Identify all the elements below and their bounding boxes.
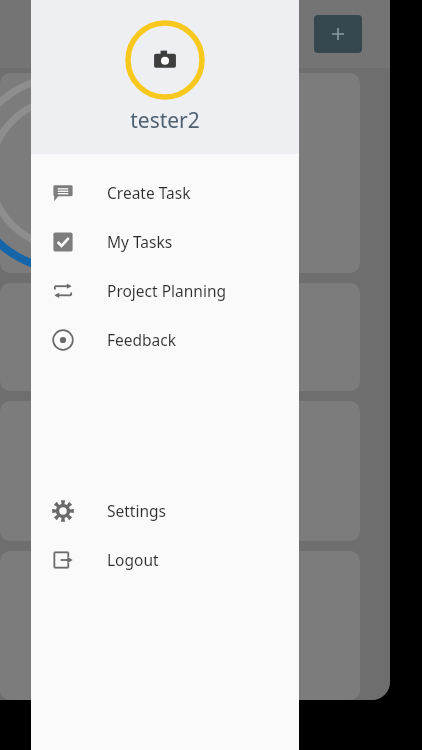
button[interactable]: Settings: [31, 486, 299, 535]
staticText: tester2: [130, 106, 200, 135]
button[interactable]: Feedback: [31, 315, 299, 364]
staticText: Create Task: [107, 182, 191, 203]
button[interactable]: [0, 73, 360, 273]
staticText: Settings: [107, 500, 166, 521]
button[interactable]: Progress: [0, 401, 360, 541]
button[interactable]: Logout: [31, 535, 299, 584]
staticText: Feedback: [107, 329, 177, 350]
button[interactable]: Project Planning: [31, 266, 299, 315]
button[interactable]: Create Task: [31, 168, 299, 217]
button[interactable]: Comments: [0, 283, 360, 391]
staticText: Project Planning: [107, 280, 226, 301]
button[interactable]: My Tasks: [31, 217, 299, 266]
staticText: My Tasks: [107, 231, 173, 252]
button[interactable]: Completed: [0, 551, 360, 700]
staticText: Completed: [50, 559, 128, 579]
button[interactable]: Change profile photo: [125, 20, 205, 100]
button[interactable]: Add: [314, 15, 362, 53]
staticText: Logout: [107, 549, 159, 570]
